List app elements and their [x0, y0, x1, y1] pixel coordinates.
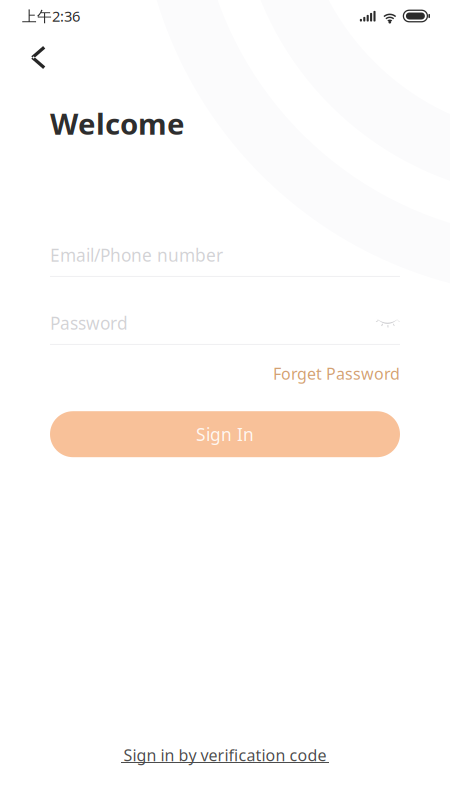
staticText: Email/Phone number: [50, 243, 223, 266]
staticText: Welcome: [50, 104, 185, 143]
staticText: Sign in by verification code: [123, 744, 326, 766]
staticText: Forget Password: [273, 363, 400, 384]
staticText: 上午2:36: [22, 6, 80, 26]
button[interactable]: Sign In: [50, 411, 400, 457]
staticText: Password: [50, 311, 128, 334]
staticText: Sign In: [196, 423, 254, 446]
button[interactable]: Forget Password: [273, 363, 400, 384]
button[interactable]: Back: [0, 32, 68, 76]
button[interactable]: Show password: [376, 317, 400, 328]
button[interactable]: Sign in by verification code: [121, 745, 329, 765]
